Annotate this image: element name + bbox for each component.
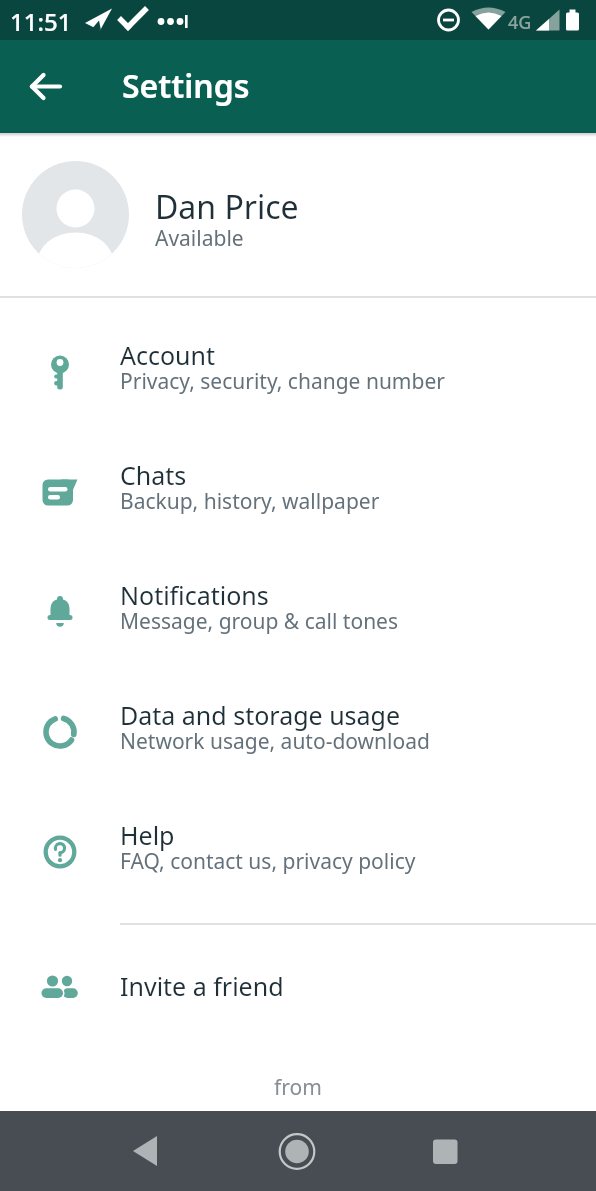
staticText: Settings <box>122 64 250 108</box>
staticText: Dan Price <box>155 185 299 229</box>
button[interactable] <box>271 1125 323 1177</box>
button[interactable] <box>26 66 66 106</box>
staticText: Backup, history, wallpaper <box>120 487 380 516</box>
staticText: Notifications <box>120 578 269 612</box>
staticText: Data and storage usage <box>120 698 401 732</box>
button[interactable]: Help <box>0 792 596 912</box>
button[interactable] <box>123 1125 175 1177</box>
staticText: Available <box>155 224 244 253</box>
button[interactable]: Account <box>0 312 596 432</box>
staticText: 4G <box>508 10 532 35</box>
button[interactable] <box>419 1125 471 1177</box>
button[interactable]: Dan Price <box>0 133 596 296</box>
button[interactable]: Data and storage usage <box>0 672 596 792</box>
staticText: Account <box>120 338 216 372</box>
staticText: from <box>0 1073 596 1102</box>
button[interactable]: Invite a friend <box>0 936 596 1040</box>
staticText: Invite a friend <box>120 969 284 1003</box>
staticText: 11:51 <box>10 5 72 38</box>
staticText: FAQ, contact us, privacy policy <box>120 847 416 876</box>
staticText: Help <box>120 818 175 852</box>
staticText: Chats <box>120 458 187 492</box>
button[interactable]: Chats <box>0 432 596 552</box>
staticText: Privacy, security, change number <box>120 367 445 396</box>
staticText: Message, group & call tones <box>120 607 399 636</box>
staticText: Network usage, auto-download <box>120 727 430 756</box>
button[interactable]: Notifications <box>0 552 596 672</box>
